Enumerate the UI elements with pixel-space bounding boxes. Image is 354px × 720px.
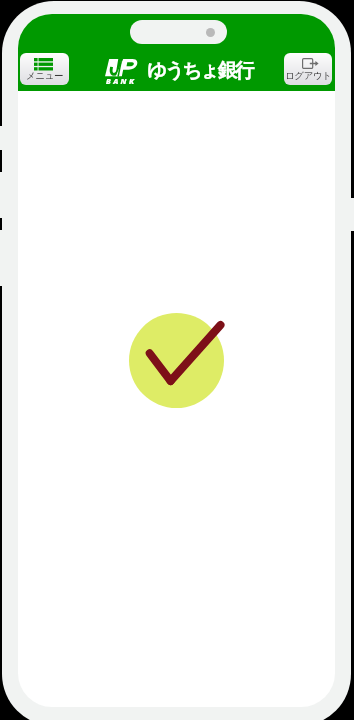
staticText: ゆうちょ銀行 [147,58,253,83]
staticText: ログアウト [285,70,332,82]
button[interactable]: ログアウト [284,53,332,85]
button[interactable]: メニュー [20,53,69,85]
staticText: メニュー [26,70,64,82]
staticText: BANK [106,76,137,86]
